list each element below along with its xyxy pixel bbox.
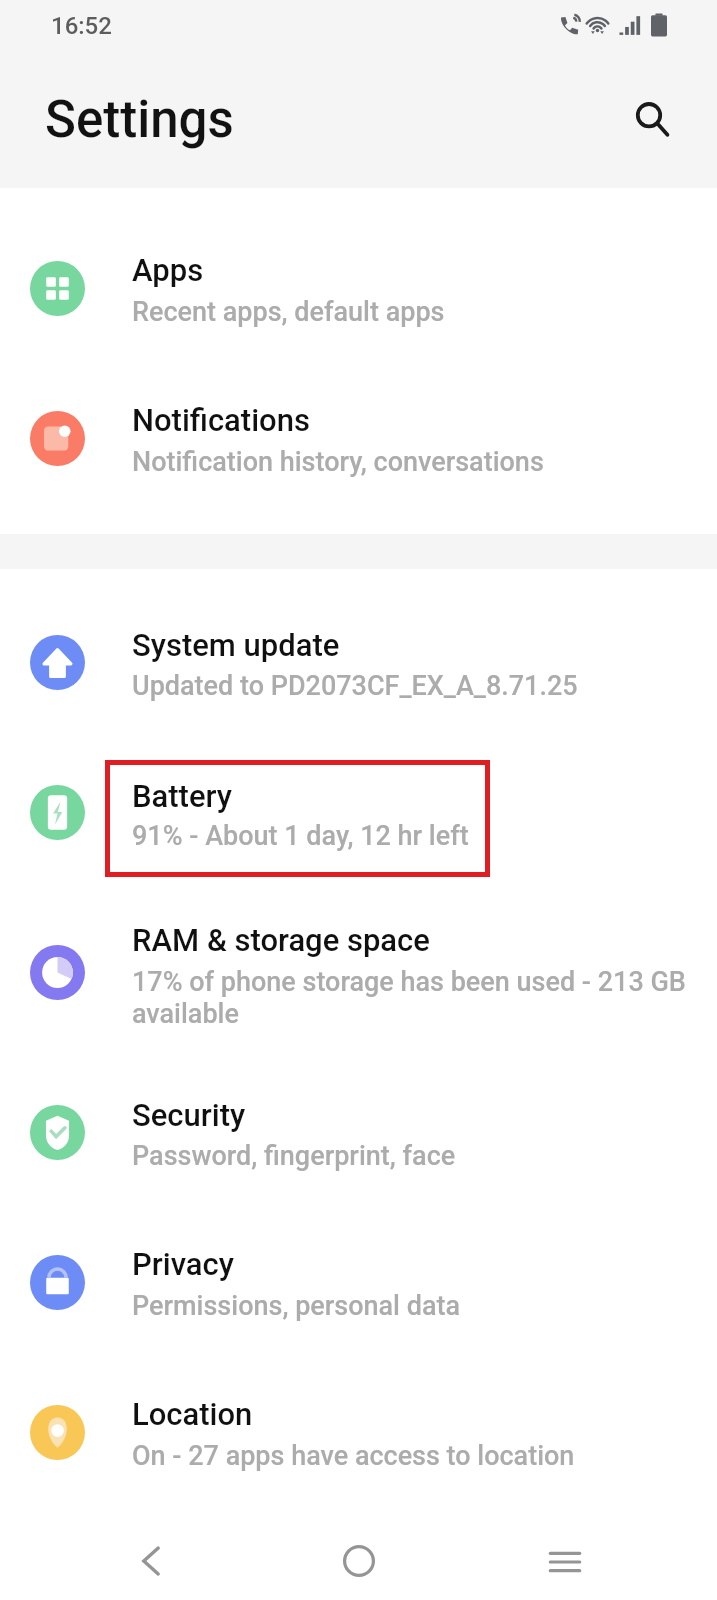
staticText: RAM & storage space — [132, 922, 430, 958]
button[interactable]: System update — [0, 587, 717, 737]
staticText: Apps — [132, 252, 204, 288]
staticText: Battery — [132, 778, 232, 814]
button[interactable]: Battery — [0, 737, 717, 887]
staticText: Security — [132, 1097, 246, 1133]
staticText: System update — [132, 627, 340, 663]
staticText: Notifications — [132, 402, 310, 438]
staticText: Notification history, conversations — [132, 446, 544, 478]
staticText: 16:52 — [51, 12, 112, 40]
staticText: Recent apps, default apps — [132, 296, 445, 328]
button[interactable]: Home — [309, 1511, 409, 1600]
button[interactable]: Location — [0, 1357, 717, 1507]
staticText: 91% - About 1 day, 12 hr left — [132, 820, 469, 852]
button[interactable]: Recent apps — [515, 1512, 615, 1600]
button[interactable]: RAM & storage space — [0, 897, 717, 1047]
button[interactable]: Search — [614, 81, 692, 159]
staticText: Location — [132, 1396, 253, 1432]
staticText: Password, fingerprint, face — [132, 1140, 456, 1172]
button[interactable]: Back — [101, 1511, 201, 1600]
button[interactable]: Notifications — [0, 363, 717, 513]
button[interactable]: Security — [0, 1057, 717, 1207]
staticText: Settings — [45, 90, 234, 150]
staticText: Privacy — [132, 1246, 234, 1282]
staticText: 17% of phone storage has been used - 213… — [132, 966, 686, 1029]
staticText: Permissions, personal data — [132, 1290, 461, 1322]
staticText: On - 27 apps have access to location — [132, 1440, 575, 1472]
button[interactable]: Apps — [0, 213, 717, 363]
button[interactable]: Privacy — [0, 1207, 717, 1357]
staticText: Updated to PD2073CF_EX_A_8.71.25 — [132, 670, 578, 702]
